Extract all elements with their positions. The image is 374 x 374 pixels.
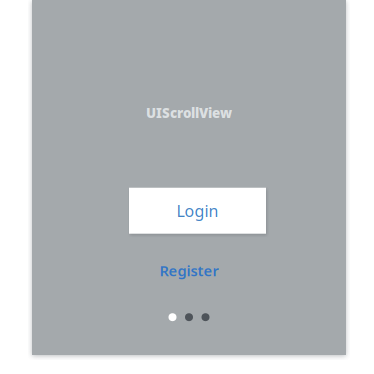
button[interactable]: Page 1 — [168, 313, 176, 321]
button[interactable]: Login — [129, 188, 266, 234]
staticText: Login — [176, 200, 218, 221]
button[interactable]: Page 3 — [201, 313, 209, 321]
button[interactable]: Register — [159, 261, 218, 280]
staticText: UIScrollView — [146, 104, 232, 122]
staticText: Register — [159, 261, 218, 280]
button[interactable]: Page 2 — [185, 313, 193, 321]
